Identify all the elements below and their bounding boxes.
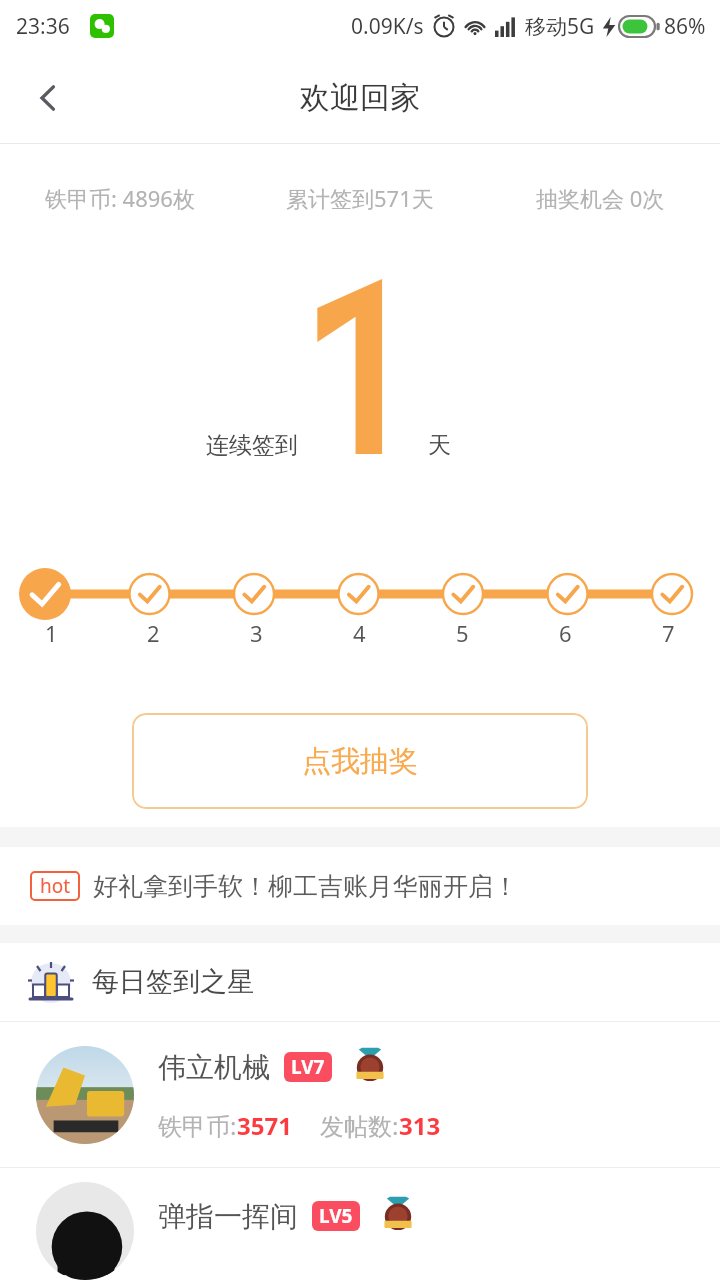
staticText: 6: [559, 618, 572, 648]
staticText: 2: [147, 618, 160, 648]
staticText: 天: [428, 431, 451, 460]
button[interactable]: 点我抽奖: [132, 713, 588, 809]
staticText: 发帖数:: [320, 1109, 399, 1142]
staticText: 313: [399, 1109, 441, 1142]
staticText: 连续签到: [206, 431, 298, 460]
staticText: LV7: [291, 1054, 325, 1080]
button[interactable]: hot: [0, 847, 720, 925]
staticText: 0.09K/s: [351, 12, 424, 41]
staticText: 3571: [237, 1109, 292, 1142]
staticText: 点我抽奖: [302, 743, 418, 780]
staticText: 弹指一挥间: [158, 1199, 298, 1234]
staticText: 每日签到之星: [92, 965, 254, 999]
staticText: 抽奖机会 0次: [536, 183, 665, 213]
staticText: 铁甲币:: [158, 1109, 237, 1142]
staticText: 欢迎回家: [300, 79, 420, 117]
staticText: LV5: [319, 1203, 353, 1229]
staticText: 好礼拿到手软！柳工吉账月华丽开启！: [93, 871, 518, 902]
button[interactable]: 弹指一挥间: [0, 1168, 720, 1280]
staticText: 4: [353, 618, 366, 648]
staticText: hot: [40, 873, 71, 899]
staticText: 移动5G: [525, 12, 595, 41]
button[interactable]: Back: [20, 70, 76, 126]
button[interactable]: 伟立机械: [0, 1022, 720, 1167]
staticText: 3: [250, 618, 263, 648]
staticText: 5: [456, 618, 469, 648]
staticText: 铁甲币: 4896枚: [45, 183, 195, 213]
staticText: 伟立机械: [158, 1050, 270, 1085]
staticText: 累计签到571天: [286, 183, 434, 213]
staticText: 1: [45, 618, 58, 648]
staticText: 7: [662, 618, 675, 648]
staticText: 86%: [664, 12, 706, 41]
staticText: 23:36: [16, 12, 70, 41]
